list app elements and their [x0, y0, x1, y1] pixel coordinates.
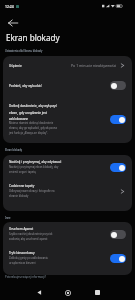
button[interactable]: Codzienne tapety: [3, 179, 132, 203]
button[interactable]: Uśpienie: [3, 56, 132, 75]
button[interactable]: Dotknij dwukrotnie, aby wyłączyć ekran, …: [3, 96, 132, 143]
staticText: Uruchom Aparat: [9, 227, 61, 231]
button[interactable]: Podnieś, aby wybudzić: [3, 75, 132, 96]
button[interactable]: Potrzebujesz więcej informacji?: [5, 275, 46, 279]
staticText: Naciśnij i przytrzymaj ekran blokady, ab…: [9, 165, 59, 174]
staticText: Uśpienie: [9, 64, 29, 68]
button[interactable]: Back: [5, 15, 20, 30]
button[interactable]: Naciśnij i przytrzymaj, aby edytować: [3, 155, 132, 179]
staticText: Codzienne tapety: [9, 184, 61, 188]
staticText: Po 1 minucie nieaktywności: [71, 63, 117, 68]
button[interactable]: Toggle on: [110, 254, 126, 263]
button[interactable]: Home: [60, 285, 76, 300]
other: Open: [119, 188, 126, 195]
button[interactable]: Toggle off: [110, 81, 126, 90]
staticText: Odkrywaj nowe obrazy i fotografie na ekr…: [9, 189, 59, 198]
staticText: Naciśnij i przytrzymaj, aby edytować: [9, 160, 63, 164]
staticText: Inne: [5, 216, 11, 220]
staticText: Tryb kieszonkowy: [9, 251, 61, 255]
button[interactable]: Toggle on: [110, 163, 126, 172]
staticText: Szybko naciśnij dwukrotnie przycisk zasi…: [9, 232, 59, 241]
button[interactable]: Toggle off: [110, 230, 126, 239]
staticText: 12:24: [5, 4, 14, 9]
staticText: Podnieś, aby wybudzić: [9, 84, 61, 88]
staticText: Możesz również dotknąć dwukrotnie ekranu…: [9, 121, 59, 135]
button[interactable]: Back: [31, 285, 47, 300]
button[interactable]: Tryb kieszonkowy: [3, 246, 132, 270]
staticText: Ustawienia dla Ekranu blokady: [5, 49, 43, 53]
staticText: Ekran blokady: [6, 32, 60, 43]
staticText: Zablokuj gesty po zablokowaniu urządzeni…: [9, 256, 59, 265]
button[interactable]: Toggle on: [110, 115, 126, 124]
staticText: Ekran blokady: [5, 148, 23, 152]
other: Open: [119, 62, 126, 69]
button[interactable]: Recent apps: [89, 285, 105, 300]
button[interactable]: Uruchom Aparat: [3, 222, 132, 246]
staticText: Dotknij dwukrotnie, aby wyłączyć ekran, …: [9, 104, 61, 120]
